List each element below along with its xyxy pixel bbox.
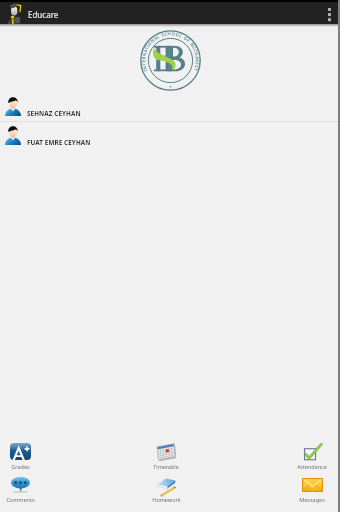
staticText: FUAT EMRE CEYHAN: [27, 138, 91, 147]
button[interactable]: More options: [318, 2, 340, 24]
staticText: Homework: [152, 496, 181, 503]
staticText: Messages: [299, 496, 325, 503]
staticText: Timetable: [153, 463, 179, 470]
button[interactable]: Grades: [0, 441, 40, 474]
staticText: Attendance: [297, 463, 327, 470]
button[interactable]: SEHNAZ CEYHAN: [0, 93, 340, 121]
button[interactable]: FUAT EMRE CEYHAN: [0, 122, 340, 150]
staticText: SEHNAZ CEYHAN: [27, 109, 81, 118]
button[interactable]: Homework: [146, 474, 186, 507]
button[interactable]: Timetable: [146, 441, 186, 474]
button[interactable]: Attendance: [292, 441, 332, 474]
staticText: Comments: [6, 496, 35, 503]
staticText: Grades: [11, 463, 30, 470]
staticText: Educare: [28, 9, 59, 20]
button[interactable]: Messages: [292, 474, 332, 507]
other: App icon: [4, 3, 21, 24]
button[interactable]: Comments: [0, 474, 40, 507]
